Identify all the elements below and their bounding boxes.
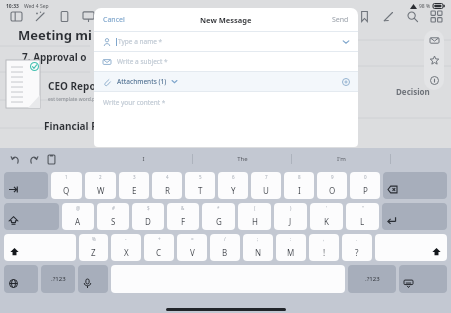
button[interactable]: * (202, 203, 235, 230)
staticText: # (112, 205, 115, 211)
button[interactable]: Sidebar (4, 4, 28, 28)
staticText: S (111, 216, 116, 227)
staticText: T (198, 185, 203, 196)
staticText: ' (326, 205, 328, 211)
button[interactable]: Mail (424, 30, 444, 50)
button[interactable]: Info (424, 70, 444, 90)
button[interactable]: : (276, 234, 306, 261)
button[interactable]: 1 (51, 172, 82, 199)
button[interactable]: 7 (251, 172, 281, 199)
button[interactable]: Write your content * (94, 92, 358, 147)
button[interactable]: Backspace (383, 172, 447, 199)
button[interactable]: & (167, 203, 199, 230)
staticText: Q (63, 185, 70, 196)
staticText: E (132, 185, 137, 196)
button[interactable]: + (144, 234, 174, 261)
button[interactable]: I (95, 148, 192, 170)
button[interactable]: Magic wand (28, 4, 52, 28)
button[interactable]: .?123 (348, 265, 396, 293)
staticText: M (287, 247, 295, 258)
button[interactable]: ( (238, 203, 271, 230)
staticText: O (329, 185, 336, 196)
button[interactable]: Cancel (100, 12, 128, 28)
button[interactable]: / (210, 234, 240, 261)
button[interactable]: 5 (185, 172, 215, 199)
button[interactable]: ' (310, 203, 343, 230)
button[interactable]: Redo (24, 150, 42, 168)
button[interactable]: 9 (317, 172, 347, 199)
button[interactable]: $ (132, 203, 164, 230)
button[interactable]: 3 (119, 172, 149, 199)
staticText: , (323, 236, 325, 242)
button[interactable]: 0 (350, 172, 380, 199)
button[interactable]: ) (274, 203, 307, 230)
staticText: .?123 (365, 275, 380, 283)
staticText: Attachments (1) (117, 77, 167, 86)
staticText: H (252, 216, 258, 227)
button[interactable]: .?123 (41, 265, 75, 293)
button[interactable]: Edit (376, 4, 400, 28)
button[interactable]: Add attachment (339, 75, 352, 88)
staticText: CEO Repo (48, 79, 96, 93)
button[interactable]: Shift (4, 234, 76, 261)
button[interactable]: @ (62, 203, 94, 230)
staticText: ? (355, 247, 359, 258)
button[interactable]: ; (243, 234, 273, 261)
staticText: Cancel (103, 15, 125, 25)
staticText: W (97, 185, 105, 196)
button[interactable]: # (97, 203, 129, 230)
button[interactable]: Presentation (76, 4, 100, 28)
button[interactable]: , (309, 234, 339, 261)
staticText: K (324, 216, 329, 227)
staticText: V (190, 247, 195, 258)
button[interactable]: The (193, 148, 291, 170)
button[interactable]: Dictation (78, 265, 108, 293)
button[interactable]: Undo (6, 150, 24, 168)
staticText: 10:33 (6, 3, 19, 10)
button[interactable]: Search (400, 4, 424, 28)
button[interactable]: 6 (218, 172, 248, 199)
button[interactable]: Type a name * (94, 32, 358, 51)
staticText: Y (231, 185, 236, 196)
button[interactable]: Paste (42, 150, 60, 168)
staticText: N (255, 247, 262, 258)
button[interactable]: Send (329, 12, 352, 28)
button[interactable]: Favorite (424, 50, 444, 70)
staticText: 1 (65, 174, 68, 180)
button[interactable]: Tab (4, 172, 48, 199)
button[interactable]: Document (52, 4, 76, 28)
staticText: Z (91, 247, 96, 258)
button[interactable]: Attachments (1) (94, 72, 358, 91)
button[interactable]: Expand recipients (339, 35, 352, 48)
staticText: * (217, 205, 220, 211)
staticText: ! (323, 247, 326, 258)
button[interactable]: % (79, 234, 108, 261)
staticText: A (75, 216, 81, 227)
button[interactable]: I'm (292, 148, 390, 170)
staticText: J (289, 216, 292, 227)
staticText: est template word.p (48, 96, 96, 103)
staticText: The (237, 155, 248, 163)
staticText: C (156, 247, 162, 258)
button[interactable]: Return (382, 203, 447, 230)
button[interactable]: Bookmark (352, 4, 376, 28)
staticText: Type a name * (118, 37, 163, 46)
button[interactable]: 8 (284, 172, 314, 199)
button[interactable]: Hide keyboard (399, 265, 447, 293)
button[interactable]: = (177, 234, 207, 261)
button[interactable]: " (346, 203, 379, 230)
staticText: 4 (166, 174, 169, 180)
button[interactable]: Globe (4, 265, 38, 293)
button[interactable]: 4 (152, 172, 182, 199)
button[interactable]: Apps (424, 4, 448, 28)
button[interactable]: 2 (85, 172, 116, 199)
button[interactable]: . (342, 234, 372, 261)
staticText: : (290, 236, 292, 242)
staticText: + (158, 236, 161, 242)
staticText: R (165, 185, 170, 196)
button[interactable]: Caps lock (4, 203, 59, 230)
button[interactable]: - (111, 234, 141, 261)
button[interactable]: Write a subject * (94, 52, 358, 71)
button[interactable]: Shift right (375, 234, 447, 261)
